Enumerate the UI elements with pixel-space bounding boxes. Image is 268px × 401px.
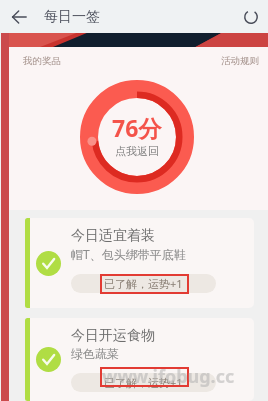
button[interactable]: 今日开运食物: [30, 318, 254, 401]
button[interactable]: 已了解，运势+1: [71, 373, 216, 392]
button[interactable]: 今日适宜着装: [30, 218, 254, 308]
staticText: 今日适宜着装: [71, 227, 155, 245]
button[interactable]: 已了解，运势+1: [71, 274, 216, 293]
staticText: 每日一签: [44, 8, 100, 26]
staticText: www.ifobug.cc: [102, 364, 235, 389]
staticText: 76分: [112, 112, 162, 143]
staticText: 点我返回: [115, 144, 159, 158]
button[interactable]: 76分: [80, 80, 194, 194]
staticText: 已了解，运势+1: [104, 375, 183, 390]
staticText: 今日开运食物: [71, 327, 155, 345]
button[interactable]: Refresh: [234, 0, 268, 33]
button[interactable]: Back: [0, 0, 38, 33]
button[interactable]: 活动规则: [221, 55, 259, 67]
button[interactable]: 我的奖品: [23, 55, 61, 67]
staticText: 帽T、包头绑带平底鞋: [71, 246, 186, 262]
staticText: 绿色蔬菜: [71, 346, 119, 361]
staticText: 已了解，运势+1: [104, 276, 183, 291]
